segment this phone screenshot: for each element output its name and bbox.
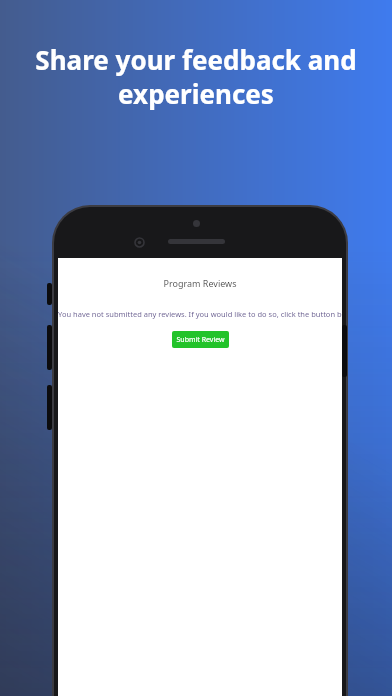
button[interactable]: Submit Review <box>172 331 229 348</box>
other: Volume up <box>47 325 52 370</box>
other: Power <box>342 325 347 377</box>
other: Volume down <box>47 385 52 430</box>
staticText: You have not submitted any reviews. If y… <box>58 309 342 319</box>
staticText: Submit Review <box>176 335 225 345</box>
staticText: Program Reviews <box>58 277 342 289</box>
other: Mute switch <box>47 283 52 305</box>
staticText: Share your feedback and experiences <box>26 42 366 111</box>
